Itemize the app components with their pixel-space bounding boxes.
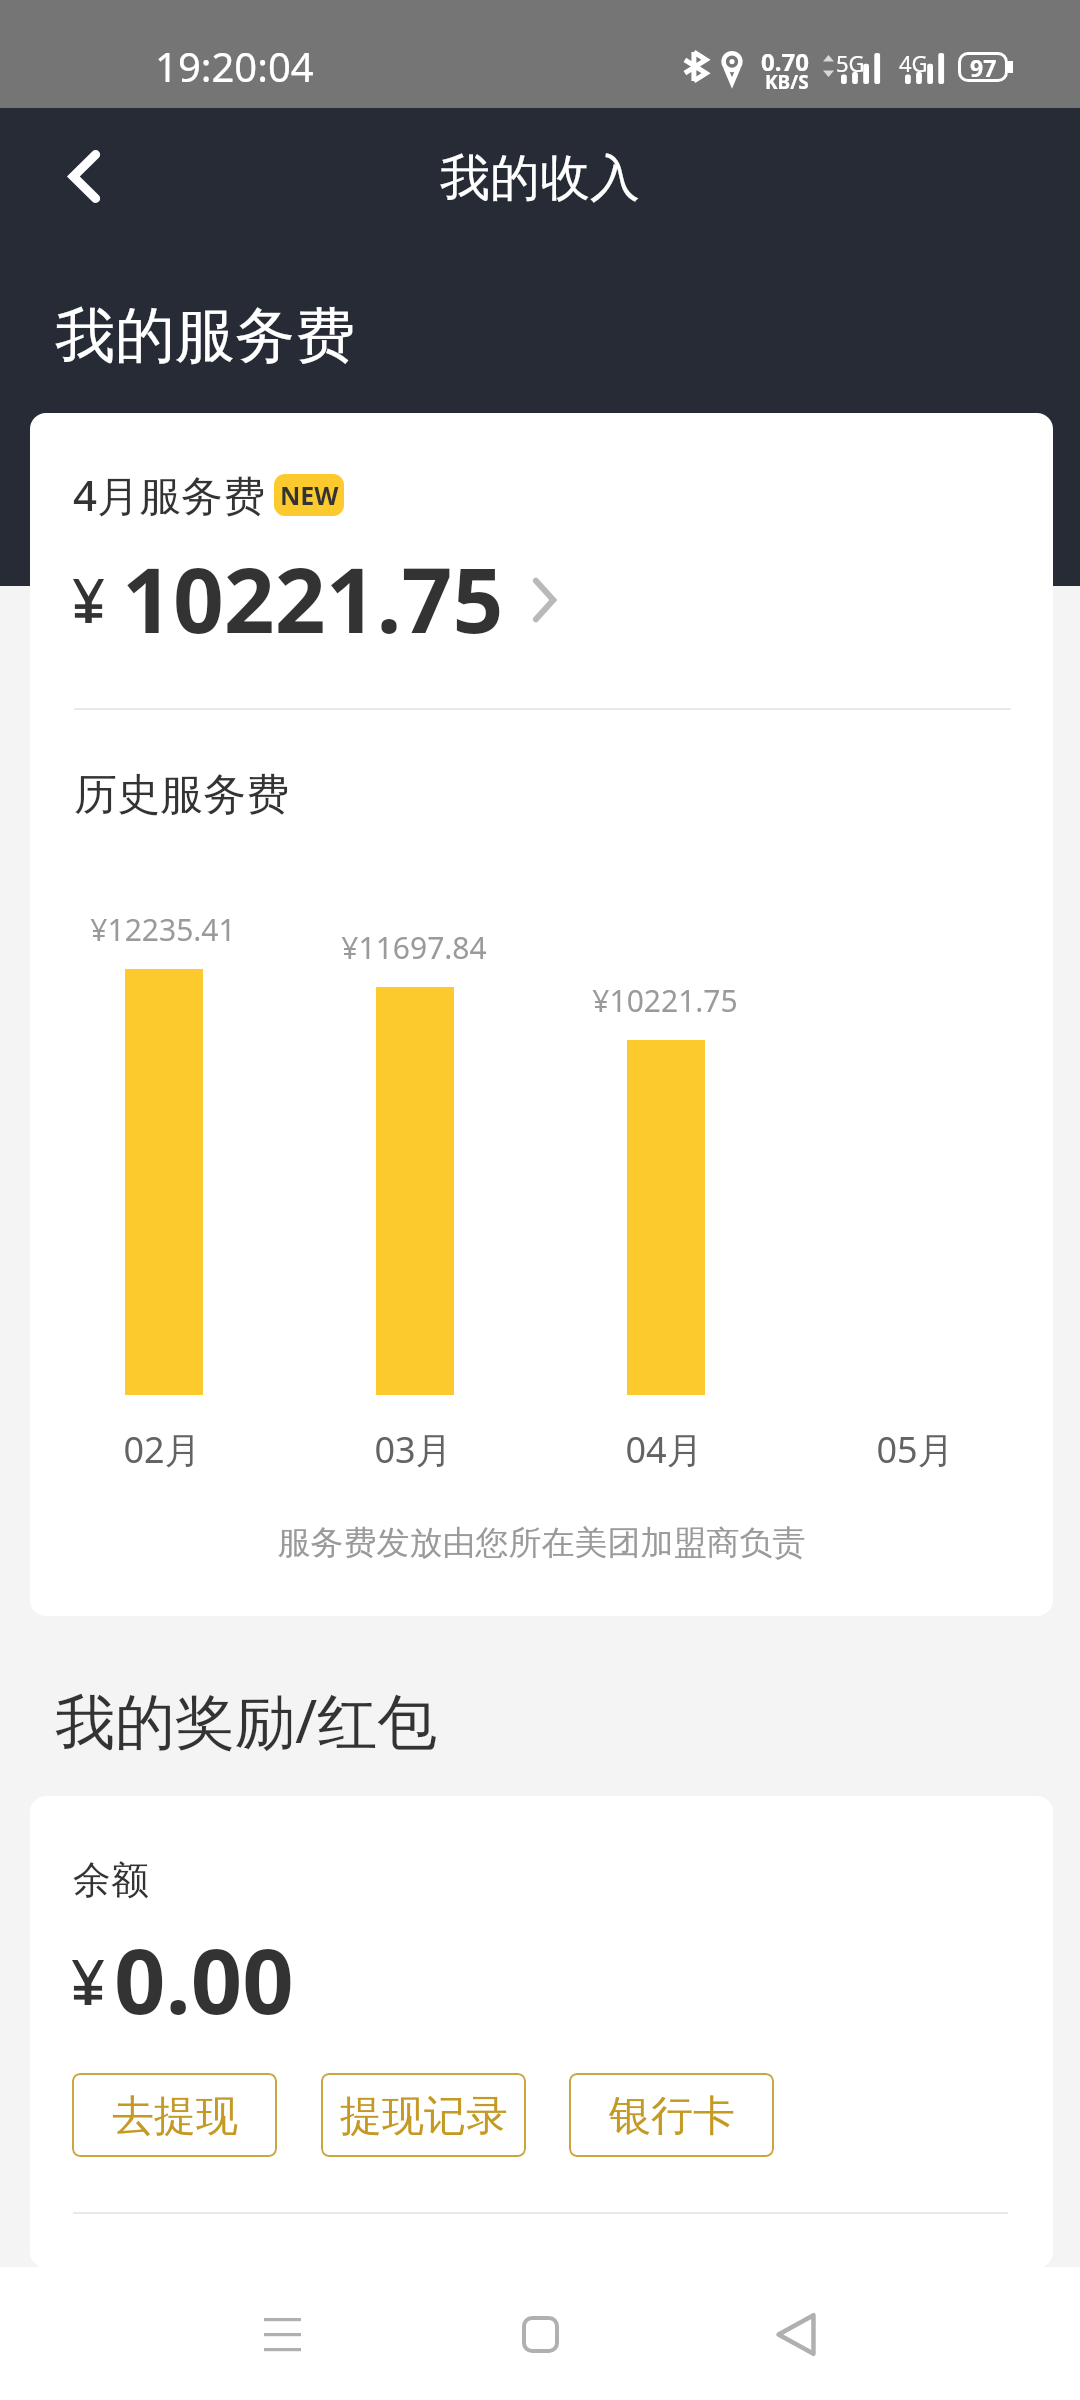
staticText: 0.70 xyxy=(761,45,809,78)
staticText: KB/S xyxy=(765,69,809,95)
button[interactable]: Back xyxy=(24,116,144,236)
staticText: 4月服务费 xyxy=(73,466,266,523)
button[interactable]: Recent apps xyxy=(222,2274,342,2394)
staticText: 服务费发放由您所在美团加盟商负责 xyxy=(30,1522,1053,1564)
button[interactable]: Back xyxy=(736,2274,856,2394)
button[interactable]: View April service fee detail xyxy=(60,538,600,650)
staticText: NEW xyxy=(280,478,339,512)
staticText: 提现记录 xyxy=(340,2090,508,2143)
staticText: 去提现 xyxy=(112,2090,238,2143)
staticText: 余额 xyxy=(73,1856,149,1904)
staticText: 4G xyxy=(899,48,928,78)
staticText: 0.00 xyxy=(114,1918,294,2030)
staticText: 97 xyxy=(970,52,997,82)
button[interactable]: 银行卡 xyxy=(569,2073,774,2157)
staticText: 10221.75 xyxy=(122,538,504,650)
staticText: 05月 xyxy=(835,1425,995,1474)
staticText: 19:20:04 xyxy=(155,39,314,93)
staticText: 02月 xyxy=(82,1425,242,1474)
staticText: ¥10221.75 xyxy=(565,980,765,1021)
staticText: ¥12235.41 xyxy=(63,909,263,950)
button[interactable]: Home xyxy=(480,2274,600,2394)
staticText: 04月 xyxy=(584,1425,744,1474)
staticText: 03月 xyxy=(333,1425,493,1474)
button[interactable]: 提现记录 xyxy=(321,2073,526,2157)
staticText: ¥11697.84 xyxy=(314,927,514,968)
staticText: 银行卡 xyxy=(609,2090,735,2143)
staticText: 我的收入 xyxy=(440,147,640,210)
staticText: 我的服务费 xyxy=(55,298,355,374)
staticText: 5G xyxy=(836,48,865,78)
staticText: 历史服务费 xyxy=(74,768,289,822)
button[interactable]: 去提现 xyxy=(72,2073,277,2157)
staticText: 我的奖励/红包 xyxy=(55,1679,438,1761)
